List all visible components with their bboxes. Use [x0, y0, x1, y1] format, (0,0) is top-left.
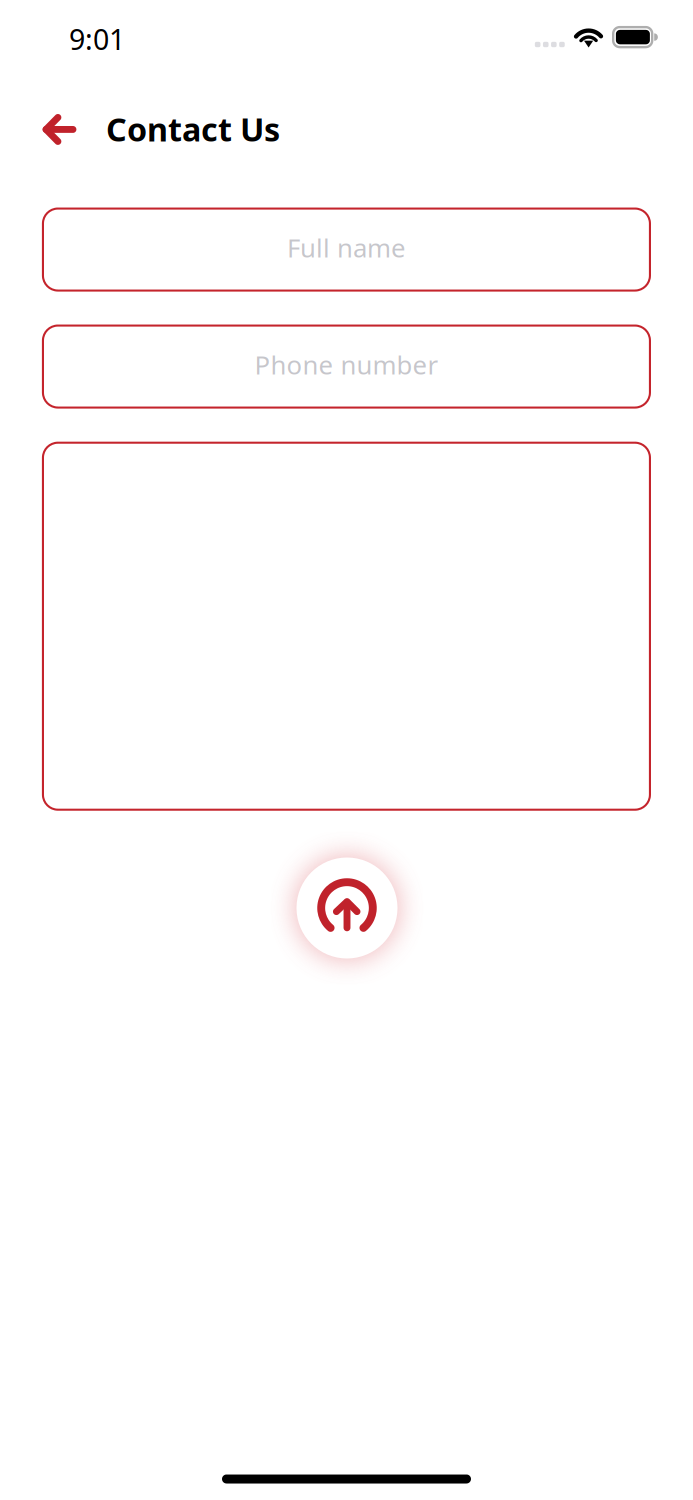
button[interactable]: Send	[287, 848, 407, 968]
button[interactable]: Back	[26, 95, 94, 163]
button[interactable]: Full name	[43, 209, 650, 291]
staticText: Contact Us	[106, 107, 280, 151]
staticText: Phone number	[254, 347, 438, 382]
button[interactable]: Phone number	[43, 326, 650, 408]
staticText: Full name	[287, 230, 406, 265]
staticText: 9:01	[69, 20, 125, 58]
button[interactable]: Message	[43, 443, 650, 810]
